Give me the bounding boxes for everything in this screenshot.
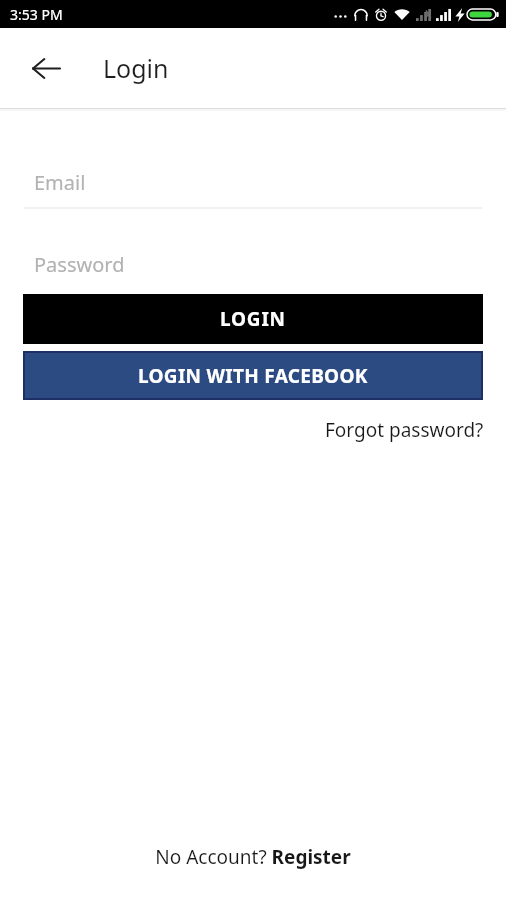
- button[interactable]: Forgot password?: [321, 413, 488, 447]
- button[interactable]: LOGIN WITH FACEBOOK: [25, 353, 481, 398]
- button[interactable]: Email: [24, 157, 482, 207]
- staticText: Password: [34, 251, 125, 278]
- staticText: LOGIN WITH FACEBOOK: [138, 363, 368, 389]
- button[interactable]: LOGIN: [23, 294, 483, 344]
- staticText: No Account? Register: [155, 844, 351, 870]
- staticText: Forgot password?: [325, 417, 484, 443]
- staticText: Email: [34, 169, 86, 196]
- staticText: 3:53 PM: [10, 5, 63, 24]
- staticText: Login: [103, 51, 169, 85]
- button[interactable]: Password: [24, 239, 482, 289]
- staticText: LOGIN: [220, 306, 286, 332]
- button[interactable]: Back: [22, 44, 70, 92]
- button[interactable]: No Account? Register: [0, 838, 506, 876]
